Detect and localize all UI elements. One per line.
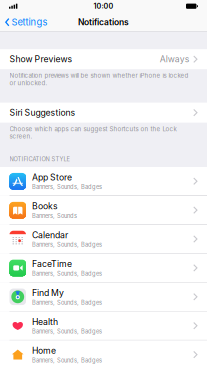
staticText: FaceTime — [32, 259, 72, 269]
button[interactable]: Show Previews — [0, 49, 207, 69]
staticText: Banners, Sounds, Badges — [32, 299, 102, 306]
button[interactable]: Books — [0, 196, 207, 224]
button[interactable]: Settings — [0, 13, 54, 31]
button[interactable]: Health — [0, 311, 207, 340]
staticText: Notifications — [78, 17, 129, 27]
staticText: NOTIFICATION STYLE — [9, 156, 69, 162]
staticText: Show Previews — [9, 54, 72, 64]
staticText: Health — [32, 316, 58, 327]
staticText: Calendar — [32, 230, 68, 240]
staticText: Find My — [32, 288, 64, 298]
staticText: Notification previews will be shown whet… — [9, 72, 188, 87]
staticText: Siri Suggestions — [9, 107, 75, 118]
staticText: Books — [32, 201, 58, 211]
button[interactable]: Find My — [0, 283, 207, 311]
staticText: 10:00 — [93, 2, 113, 10]
staticText: App Store — [32, 172, 72, 182]
staticText: Always — [160, 54, 190, 64]
button[interactable]: App Store — [0, 167, 207, 195]
button[interactable]: Home — [0, 340, 207, 368]
button[interactable]: Calendar — [0, 225, 207, 253]
staticText: Home — [32, 345, 56, 356]
staticText: Banners, Sounds — [32, 212, 77, 219]
staticText: Banners, Sounds, Badges — [32, 270, 102, 277]
staticText: Settings — [12, 16, 48, 28]
staticText: Banners, Sounds, Badges — [32, 241, 102, 248]
staticText: Choose which apps can suggest Shortcuts … — [9, 125, 176, 140]
staticText: Banners, Sounds, Badges — [32, 183, 102, 190]
button[interactable]: Siri Suggestions — [0, 103, 207, 123]
staticText: Banners, Sounds, Badges — [32, 357, 102, 364]
button[interactable]: FaceTime — [0, 254, 207, 282]
staticText: Banners, Sounds, Badges — [32, 328, 102, 335]
